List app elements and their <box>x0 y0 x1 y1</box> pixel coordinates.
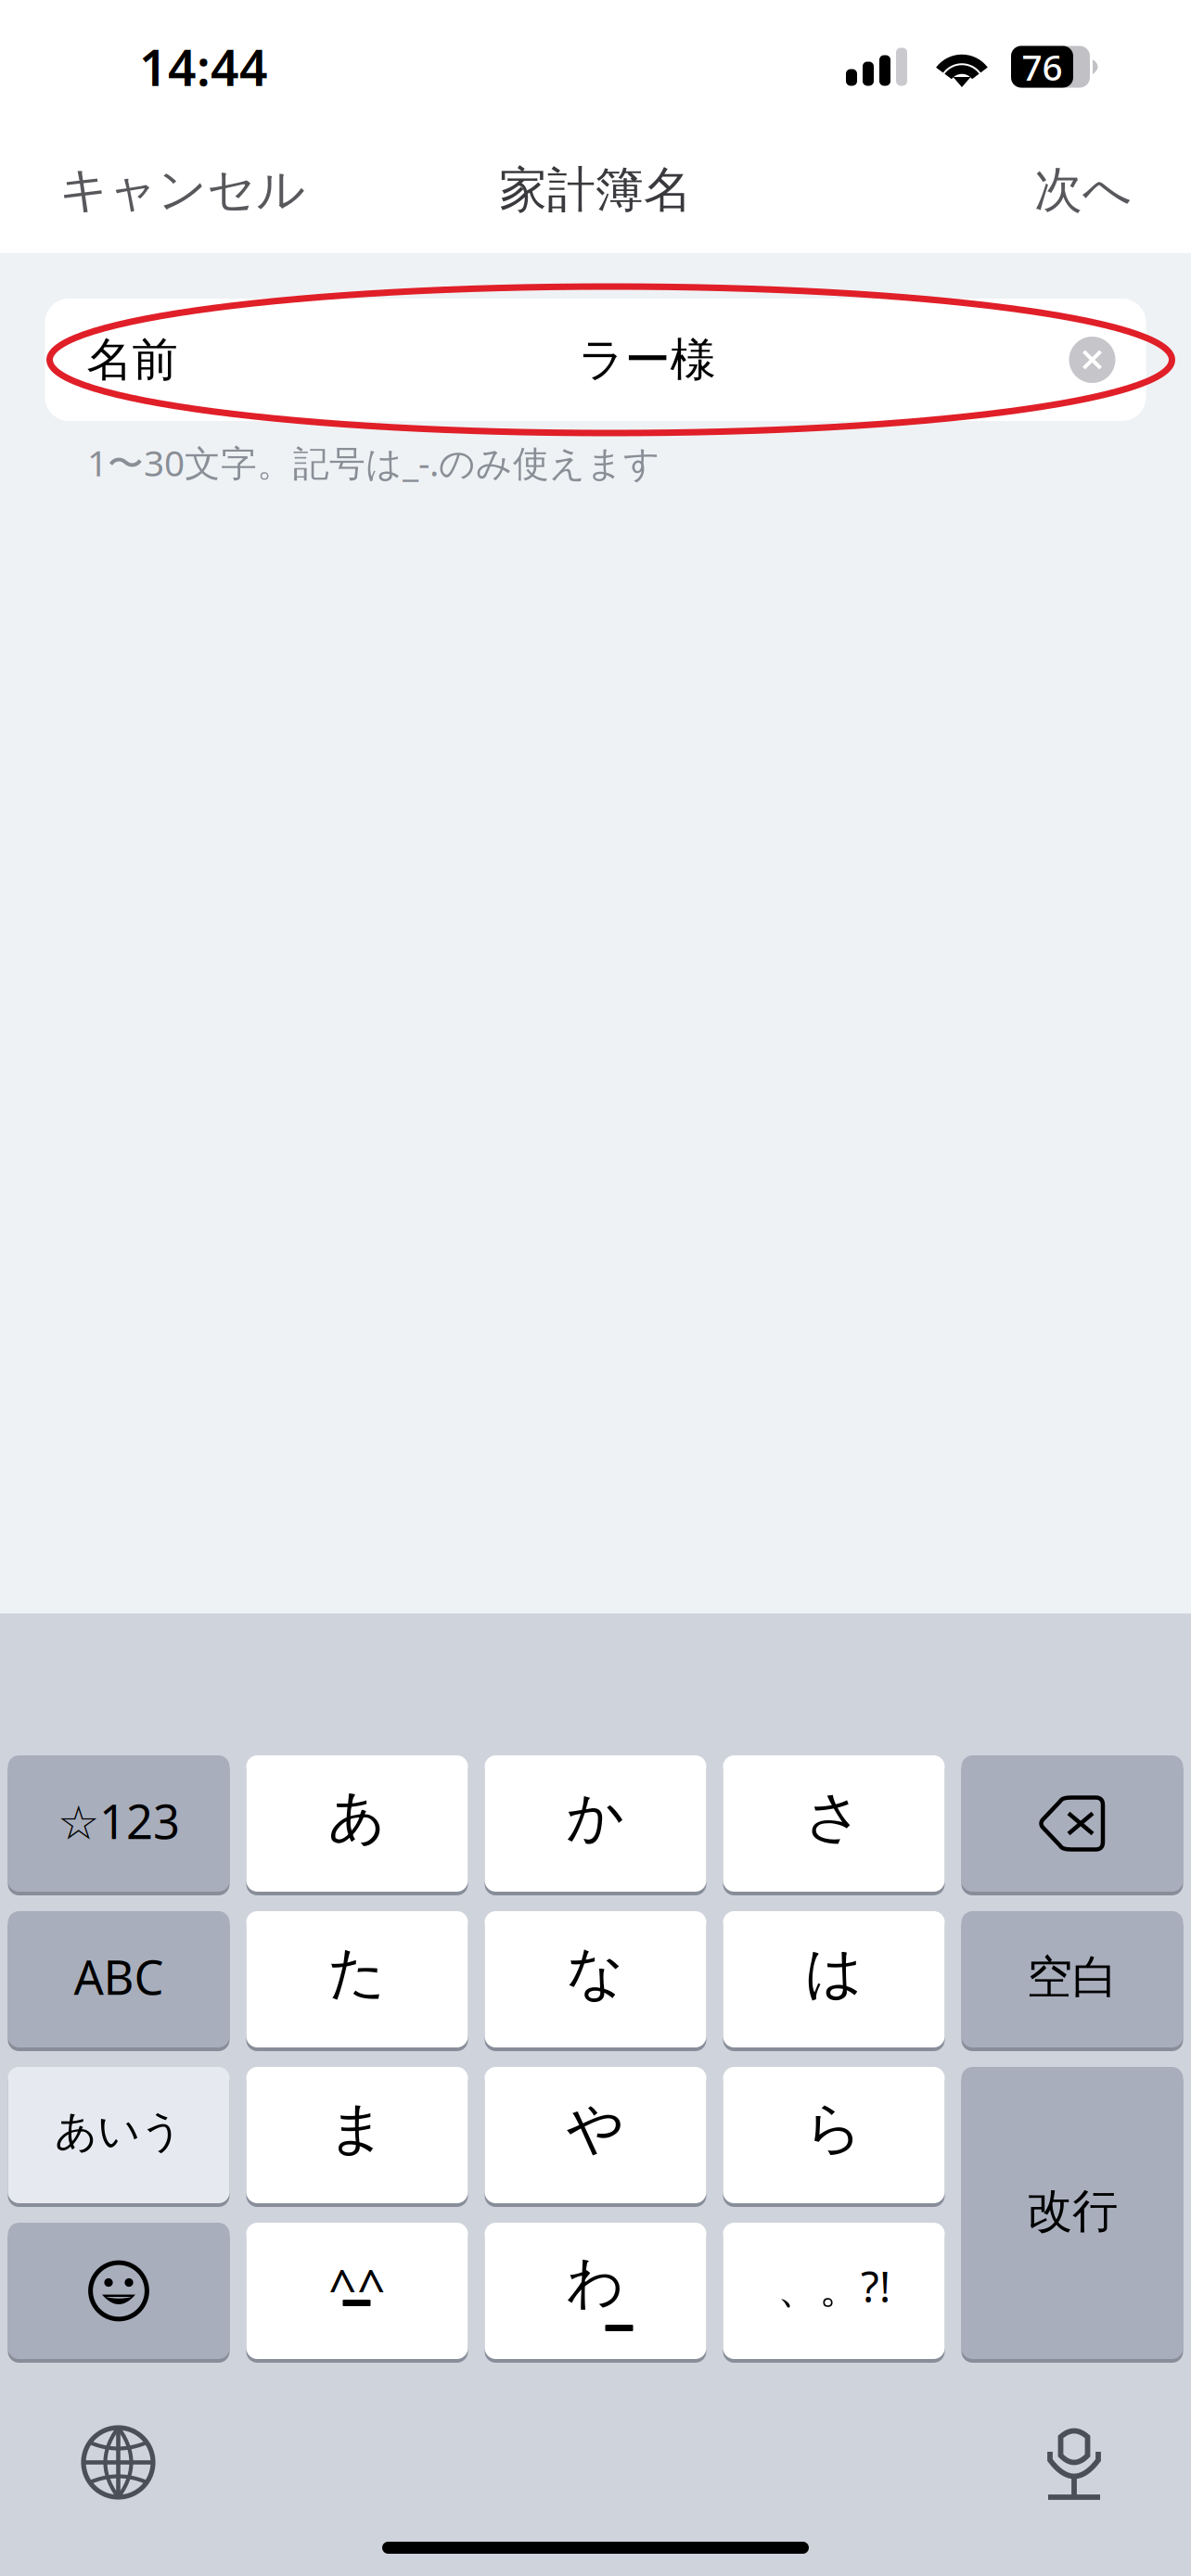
staticText: 14:44 <box>139 34 268 100</box>
button[interactable]: ABC <box>8 1911 230 2051</box>
button[interactable]: 、。?! <box>723 2223 945 2363</box>
staticText: あいう <box>55 2106 183 2157</box>
staticText: か <box>566 1782 625 1852</box>
button[interactable]: 空白 <box>961 1911 1183 2051</box>
button[interactable]: か <box>485 1755 706 1895</box>
staticText: あ <box>328 1782 386 1852</box>
staticText: ラー様 <box>578 332 716 388</box>
button[interactable]: な <box>485 1911 706 2051</box>
button[interactable]: は <box>723 1911 945 2051</box>
button[interactable]: Dictation <box>1044 2425 1104 2510</box>
button[interactable]: ら <box>723 2067 945 2207</box>
button[interactable] <box>8 2223 230 2363</box>
staticText: ^^ <box>328 2253 386 2319</box>
staticText: 名前 <box>87 332 178 388</box>
button[interactable]: さ <box>723 1755 945 1895</box>
staticText: さ <box>805 1782 863 1852</box>
button[interactable]: 次へ <box>1025 142 1141 238</box>
button[interactable]: Switch keyboard <box>81 2425 156 2500</box>
staticText: わ <box>566 2248 625 2318</box>
button[interactable]: 改行 <box>961 2067 1183 2363</box>
button[interactable]: あ <box>246 1755 468 1895</box>
staticText: は <box>805 1938 863 2008</box>
staticText: 家計簿名 <box>499 160 692 220</box>
staticText: 76 <box>1022 43 1063 91</box>
staticText: キャンセル <box>59 160 305 220</box>
button[interactable] <box>961 1755 1183 1895</box>
staticText: や <box>566 2094 625 2163</box>
staticText: ABC <box>74 1945 164 2008</box>
staticText: 次へ <box>1034 160 1132 220</box>
button[interactable]: ま <box>246 2067 468 2207</box>
button[interactable]: ^^ <box>246 2223 468 2363</box>
button[interactable]: や <box>485 2067 706 2207</box>
button[interactable]: あいう <box>8 2067 230 2207</box>
button[interactable]: わ <box>485 2223 706 2363</box>
staticText: ら <box>805 2094 863 2163</box>
staticText: た <box>328 1938 386 2008</box>
staticText: 改行 <box>1027 2183 1118 2239</box>
staticText: 1〜30文字。記号は_-.のみ使えます <box>87 439 660 486</box>
button[interactable]: Clear text <box>1069 337 1115 383</box>
button[interactable]: キャンセル <box>50 142 314 238</box>
staticText: ☆123 <box>58 1790 180 1852</box>
staticText: ま <box>328 2094 386 2163</box>
button[interactable]: ☆123 <box>8 1755 230 1895</box>
button[interactable]: た <box>246 1911 468 2051</box>
staticText: 空白 <box>1027 1949 1118 2006</box>
staticText: 、。?! <box>777 2258 890 2314</box>
staticText: な <box>566 1938 625 2008</box>
